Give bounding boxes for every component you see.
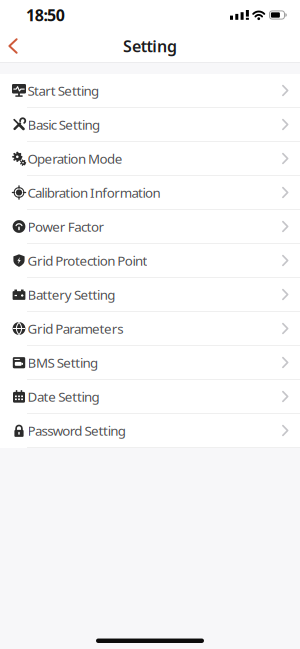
staticText: Grid Parameters: [27, 320, 123, 337]
button[interactable]: Battery Setting: [0, 278, 300, 312]
button[interactable]: Start Setting: [0, 74, 300, 108]
button[interactable]: Calibration Information: [0, 176, 300, 210]
button[interactable]: Grid Parameters: [0, 312, 300, 346]
staticText: Start Setting: [27, 82, 99, 99]
staticText: Grid Protection Point: [27, 252, 147, 269]
button[interactable]: Date Setting: [0, 380, 300, 414]
staticText: Battery Setting: [27, 286, 115, 303]
staticText: Password Setting: [27, 422, 126, 439]
button[interactable]: Back: [0, 30, 28, 62]
staticText: Basic Setting: [27, 116, 100, 133]
button[interactable]: Grid Protection Point: [0, 244, 300, 278]
staticText: BMS Setting: [27, 354, 98, 371]
staticText: Date Setting: [27, 388, 99, 405]
staticText: 18:50: [26, 4, 65, 26]
staticText: Power Factor: [27, 218, 104, 235]
button[interactable]: Basic Setting: [0, 108, 300, 142]
staticText: Calibration Information: [27, 184, 161, 201]
button[interactable]: Power Factor: [0, 210, 300, 244]
button[interactable]: Password Setting: [0, 414, 300, 448]
staticText: Operation Mode: [27, 150, 123, 167]
button[interactable]: Operation Mode: [0, 142, 300, 176]
button[interactable]: BMS Setting: [0, 346, 300, 380]
staticText: Setting: [123, 35, 177, 57]
